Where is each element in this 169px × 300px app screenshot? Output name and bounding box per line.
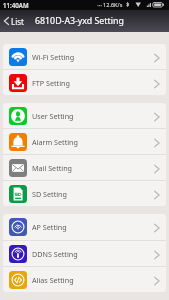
staticText: DDNS Setting [32, 249, 78, 259]
button[interactable]: Mail Setting [3, 155, 166, 180]
staticText: Alias Setting [32, 275, 74, 285]
button[interactable]: Alarm Setting [3, 129, 166, 154]
staticText: Alarm Setting [32, 137, 78, 147]
staticText: AP Setting [32, 222, 67, 232]
staticText: 12.6K/s [103, 1, 123, 9]
staticText: SD Setting [32, 189, 67, 199]
button[interactable]: Back to List [0, 10, 32, 32]
staticText: Wi-Fi Setting [32, 52, 75, 62]
button[interactable]: DDNS Setting [3, 241, 166, 266]
button[interactable]: User Setting [3, 103, 166, 128]
staticText: Mail Setting [32, 163, 73, 173]
button[interactable]: AP Setting [3, 214, 166, 240]
staticText: User Setting [32, 111, 74, 121]
staticText: FTP Setting [32, 78, 70, 88]
button[interactable]: Wi-Fi Setting [3, 44, 166, 69]
staticText: List [11, 16, 24, 27]
staticText: 6810D-A3-yxd Setting [35, 15, 124, 27]
button[interactable]: SD Setting [3, 181, 166, 206]
button[interactable]: Alias Setting [3, 267, 166, 292]
staticText: 11:40AM [3, 1, 29, 9]
button[interactable]: FTP Setting [3, 70, 166, 95]
